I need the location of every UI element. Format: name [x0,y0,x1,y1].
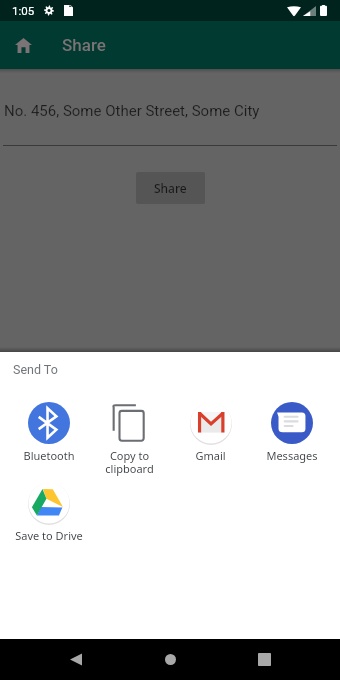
staticText: Send To [13,362,58,377]
staticText: Messages [266,448,318,463]
button[interactable]: Save to Drive [8,482,89,543]
staticText: Share [62,35,106,55]
staticText: Save to Drive [15,528,83,543]
button[interactable]: Back [58,642,93,677]
button[interactable]: Messages [251,402,332,463]
button[interactable]: Home [153,642,188,677]
staticText: 1:05 [12,4,35,17]
button[interactable]: Bluetooth [8,402,89,463]
staticText: Copy to clipboard [105,448,154,476]
button[interactable]: Share [136,172,205,204]
button[interactable]: Recent apps [247,642,282,677]
button[interactable]: Copy to clipboard [89,402,170,476]
staticText: Gmail [195,448,226,463]
staticText: No. 456, Some Other Street, Some City [4,102,260,120]
button[interactable]: Gmail [170,402,251,463]
staticText: Share [154,180,187,196]
button[interactable]: Navigate home [3,25,43,65]
staticText: Bluetooth [23,448,75,463]
